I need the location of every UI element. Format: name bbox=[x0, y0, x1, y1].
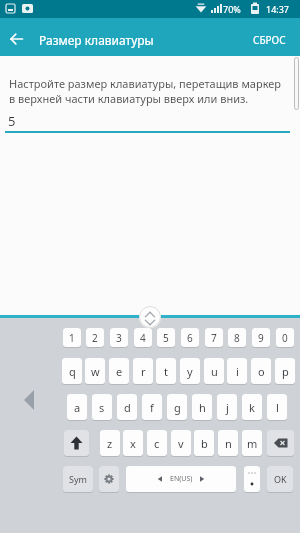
button[interactable]: w bbox=[85, 358, 105, 384]
staticText: 5 bbox=[8, 112, 16, 130]
staticText: o bbox=[258, 364, 265, 379]
button[interactable]: t bbox=[156, 358, 176, 384]
button[interactable]: 8 bbox=[228, 328, 246, 347]
button[interactable]: 5 bbox=[157, 328, 175, 347]
staticText: 5 bbox=[163, 331, 169, 345]
staticText: 8 bbox=[234, 331, 240, 345]
button[interactable]: j bbox=[217, 394, 237, 420]
staticText: t bbox=[164, 364, 168, 379]
button[interactable]: h bbox=[192, 394, 212, 420]
staticText: d bbox=[124, 400, 131, 415]
staticText: 6 bbox=[187, 331, 193, 345]
staticText: s bbox=[99, 400, 105, 415]
staticText: 9 bbox=[258, 331, 264, 345]
button[interactable]: d bbox=[117, 394, 137, 420]
button[interactable]: 6 bbox=[181, 328, 199, 347]
button[interactable]: 7 bbox=[205, 328, 223, 347]
staticText: a bbox=[74, 400, 81, 415]
staticText: m bbox=[247, 436, 258, 451]
button[interactable]: i bbox=[227, 358, 247, 384]
button[interactable]: l bbox=[267, 394, 287, 420]
button[interactable]: y bbox=[180, 358, 200, 384]
button[interactable]: c bbox=[147, 430, 167, 456]
button[interactable]: 1 bbox=[63, 328, 81, 347]
button[interactable] bbox=[267, 430, 294, 456]
staticText: e bbox=[116, 364, 123, 379]
staticText: z bbox=[107, 436, 113, 451]
staticText: l bbox=[276, 400, 279, 415]
staticText: q bbox=[69, 364, 76, 379]
staticText: r bbox=[141, 364, 146, 379]
button[interactable]: OK bbox=[267, 466, 293, 492]
button[interactable] bbox=[139, 306, 161, 328]
button[interactable]: f bbox=[142, 394, 162, 420]
staticText: EN(US) bbox=[170, 474, 193, 484]
staticText: j bbox=[226, 400, 229, 415]
staticText: k bbox=[249, 400, 255, 415]
button[interactable]: n bbox=[218, 430, 238, 456]
button[interactable]: v bbox=[171, 430, 191, 456]
button[interactable] bbox=[244, 466, 260, 492]
staticText: g bbox=[174, 400, 181, 415]
button[interactable]: СБРОС bbox=[253, 33, 286, 47]
staticText: f bbox=[150, 400, 154, 415]
staticText: 4 bbox=[140, 331, 146, 345]
button[interactable]: a bbox=[67, 394, 87, 420]
staticText: c bbox=[154, 436, 160, 451]
staticText: b bbox=[201, 436, 208, 451]
staticText: x bbox=[130, 436, 136, 451]
button[interactable] bbox=[99, 466, 119, 492]
staticText: 14:37 bbox=[266, 3, 290, 15]
button[interactable]: p bbox=[275, 358, 295, 384]
button[interactable]: 9 bbox=[252, 328, 270, 347]
button[interactable]: u bbox=[204, 358, 224, 384]
staticText: СБРОС bbox=[253, 33, 286, 47]
staticText: p bbox=[282, 364, 289, 379]
staticText: 2 bbox=[92, 331, 98, 345]
button[interactable]: m bbox=[242, 430, 262, 456]
button[interactable]: z bbox=[100, 430, 120, 456]
staticText: y bbox=[187, 364, 193, 379]
staticText: n bbox=[225, 436, 232, 451]
button[interactable]: b bbox=[194, 430, 214, 456]
button[interactable]: r bbox=[133, 358, 153, 384]
button[interactable]: 4 bbox=[134, 328, 152, 347]
staticText: h bbox=[199, 400, 206, 415]
staticText: 7 bbox=[211, 331, 217, 345]
button[interactable] bbox=[64, 430, 89, 456]
staticText: 3 bbox=[116, 331, 122, 345]
staticText: i bbox=[236, 364, 239, 379]
staticText: u bbox=[211, 364, 218, 379]
button[interactable]: 0 bbox=[276, 328, 294, 347]
staticText: Настройте размер клавиатуры, перетащив м… bbox=[9, 76, 282, 106]
staticText: OK bbox=[274, 473, 287, 485]
staticText: 1 bbox=[69, 331, 75, 345]
staticText: w bbox=[91, 364, 100, 379]
button[interactable]: k bbox=[242, 394, 262, 420]
button[interactable]: e bbox=[109, 358, 129, 384]
button[interactable]: q bbox=[62, 358, 82, 384]
button[interactable]: s bbox=[92, 394, 112, 420]
button[interactable]: Sym bbox=[63, 466, 93, 492]
button[interactable]: EN(US) bbox=[126, 466, 236, 492]
button[interactable] bbox=[6, 29, 28, 47]
button[interactable]: 3 bbox=[110, 328, 128, 347]
staticText: Sym bbox=[69, 473, 87, 485]
button[interactable]: o bbox=[251, 358, 271, 384]
staticText: v bbox=[178, 436, 184, 451]
button[interactable]: g bbox=[167, 394, 187, 420]
staticText: Размер клавиатуры bbox=[39, 32, 154, 48]
button[interactable]: 2 bbox=[86, 328, 104, 347]
staticText: 0 bbox=[282, 331, 288, 345]
button[interactable]: x bbox=[123, 430, 143, 456]
staticText: 70% bbox=[223, 3, 241, 15]
